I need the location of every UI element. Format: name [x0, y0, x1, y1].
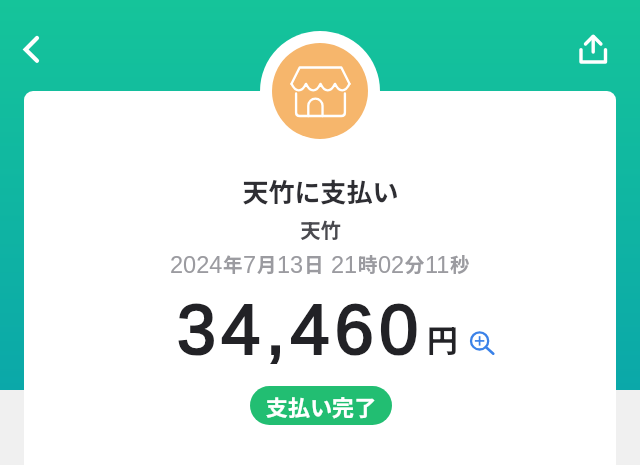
staticText: 21 — [331, 252, 358, 278]
staticText: 月 — [257, 249, 277, 277]
button[interactable]: 支払い完了 — [250, 386, 392, 425]
staticText: 日 — [304, 249, 324, 277]
staticText: 13 — [277, 252, 304, 278]
staticText: 34,460 — [177, 291, 424, 369]
staticText: 天竹に支払い — [242, 172, 399, 210]
staticText: 分 — [405, 249, 425, 277]
button[interactable]: Zoom in — [467, 328, 495, 356]
button[interactable]: Back — [4, 25, 54, 75]
staticText: 02 — [378, 252, 405, 278]
staticText: 時 — [358, 249, 378, 277]
staticText: 秒 — [450, 249, 470, 277]
staticText: 2024 — [170, 252, 223, 278]
staticText: 年 — [223, 249, 243, 277]
staticText: 11 — [425, 252, 450, 278]
staticText: 円 — [427, 316, 458, 361]
button[interactable]: Share — [570, 25, 616, 71]
staticText: 天竹 — [300, 214, 341, 244]
staticText: 7 — [243, 252, 257, 278]
staticText: 支払い完了 — [266, 390, 377, 422]
